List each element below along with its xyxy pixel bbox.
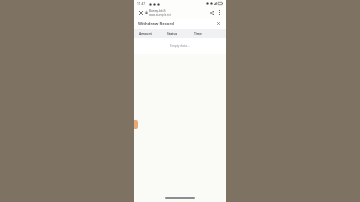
button[interactable]: More options [216, 9, 223, 16]
button[interactable]: Close dialog [215, 20, 222, 27]
staticText: Empty data... [170, 44, 190, 48]
button[interactable]: Bunny.bit.ft [149, 9, 208, 17]
staticText: www.example.net [149, 13, 171, 17]
button[interactable]: Share [208, 9, 216, 17]
staticText: Time [194, 32, 202, 36]
button[interactable]: Open side panel [134, 120, 138, 129]
staticText: Status [167, 32, 178, 36]
staticText: Withdraw Record [138, 21, 174, 27]
button[interactable]: Close [137, 9, 144, 16]
staticText: Amount [139, 32, 152, 36]
staticText: Bunny.bit.ft [149, 9, 166, 13]
staticText: 11:47 [137, 2, 146, 6]
